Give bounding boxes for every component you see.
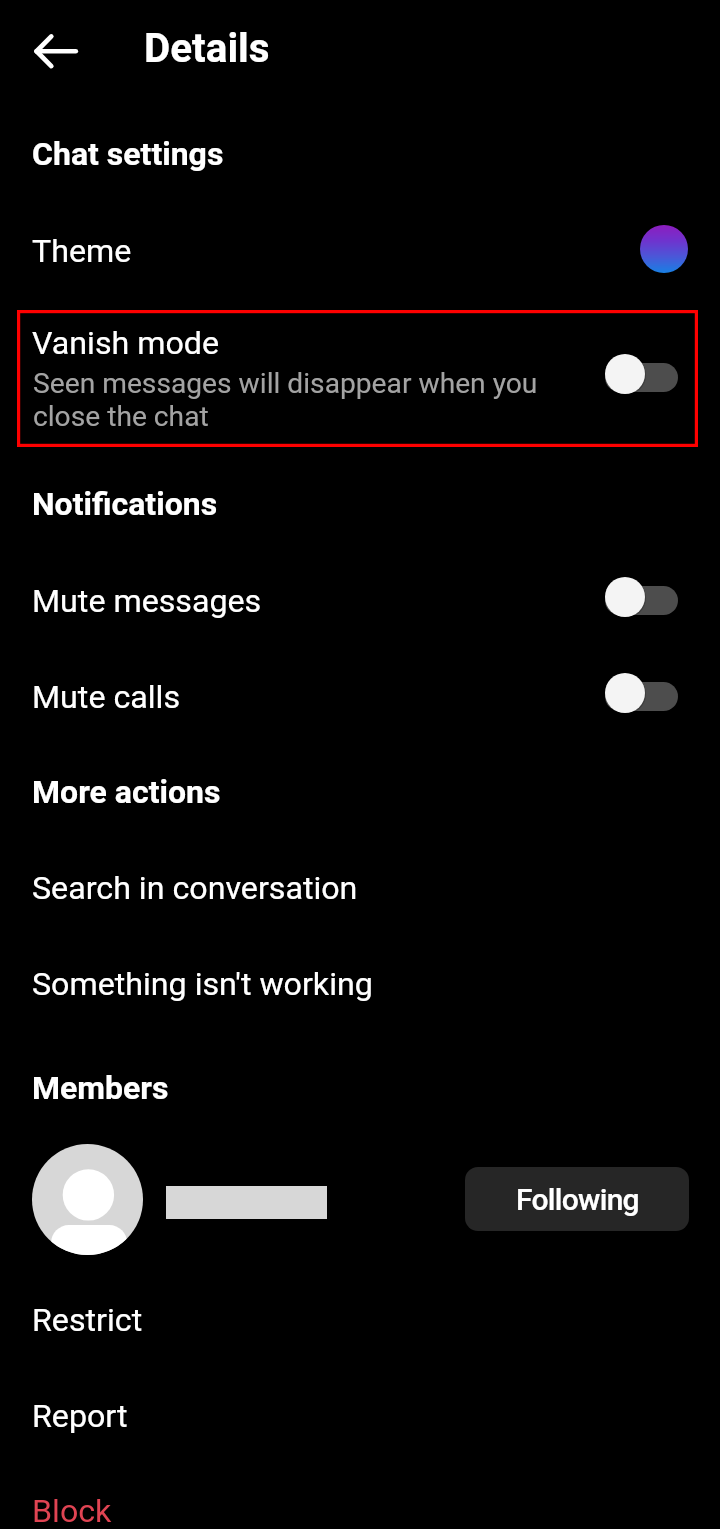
button[interactable]: Mute calls toggle [605,673,678,716]
staticText: Report [32,1397,128,1435]
button[interactable]: Mute messages toggle [605,577,678,620]
staticText: Chat settings [32,135,224,173]
button[interactable]: Mute messages [0,563,720,659]
staticText: Members [32,1069,169,1107]
button[interactable]: Report [0,1379,720,1475]
staticText: Seen messages will disappear when you cl… [33,367,563,433]
button[interactable]: Search in conversation [0,851,720,947]
staticText: Following [516,1182,639,1217]
button[interactable]: Theme [0,213,720,285]
staticText: Notifications [32,485,218,523]
button[interactable]: Vanish mode toggle [605,354,678,397]
staticText: Search in conversation [32,869,358,907]
button[interactable]: Block [0,1475,720,1529]
button[interactable]: Member avatar [32,1144,143,1255]
button[interactable]: Following [465,1167,689,1231]
button[interactable]: Restrict [0,1283,720,1379]
staticText: Restrict [32,1301,143,1339]
button[interactable]: Vanish mode [17,310,698,447]
staticText: Something isn't working [32,965,373,1003]
button[interactable]: Back [18,13,94,89]
staticText: Vanish mode [32,324,220,362]
staticText: Details [144,25,270,72]
button[interactable]: Mute calls [0,659,720,755]
staticText: Mute messages [32,582,262,620]
staticText: Theme [32,232,132,270]
button[interactable]: Something isn't working [0,947,720,1043]
staticText: Block [32,1492,112,1529]
staticText: Mute calls [32,678,181,716]
staticText: More actions [32,773,221,811]
